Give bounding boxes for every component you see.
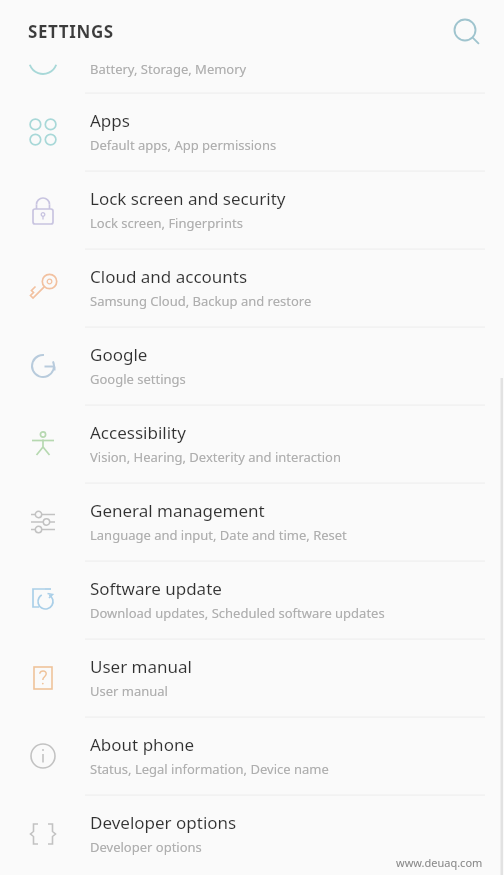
button[interactable]: Developer options [0,795,504,873]
staticText: SETTINGS [28,20,114,43]
staticText: Default apps, App permissions [90,136,277,154]
button[interactable]: Cloud and accounts [0,249,504,327]
button[interactable]: General management [0,483,504,561]
staticText: Accessibility [90,421,186,444]
staticText: Software update [90,577,222,600]
staticText: Lock screen, Fingerprints [90,214,243,232]
button[interactable]: User manual [0,639,504,717]
staticText: Status, Legal information, Device name [90,760,329,778]
staticText: User manual [90,682,168,700]
staticText: Download updates, Scheduled software upd… [90,604,385,622]
button[interactable]: Google [0,327,504,405]
staticText: Google [90,343,148,366]
button[interactable]: About phone [0,717,504,795]
staticText: Apps [90,109,130,132]
button[interactable]: Apps [0,93,504,171]
staticText: Samsung Cloud, Backup and restore [90,292,312,310]
staticText: User manual [90,655,192,678]
button[interactable]: Software update [0,561,504,639]
staticText: Google settings [90,370,186,388]
staticText: Vision, Hearing, Dexterity and interacti… [90,448,341,466]
staticText: General management [90,499,265,522]
staticText: Language and input, Date and time, Reset [90,526,347,544]
staticText: About phone [90,733,195,756]
staticText: Battery, Storage, Memory [90,60,247,78]
button[interactable]: Search [444,9,488,53]
button[interactable]: Accessibility [0,405,504,483]
staticText: Cloud and accounts [90,265,248,288]
staticText: www.deuaq.com [396,855,483,870]
staticText: Developer options [90,811,237,834]
staticText: Developer options [90,838,202,856]
button[interactable]: Lock screen and security [0,171,504,249]
staticText: Lock screen and security [90,187,286,210]
